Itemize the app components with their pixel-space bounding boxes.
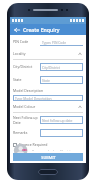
staticText: Model Colour <box>13 104 36 109</box>
button[interactable]: State <box>13 73 83 86</box>
button[interactable]: Upload profile picture <box>13 150 83 151</box>
button[interactable]: Remarks <box>13 126 83 139</box>
button[interactable]: PIN Code <box>13 35 83 48</box>
staticText: Model Description <box>13 88 44 93</box>
staticText: City/District <box>13 64 40 69</box>
button[interactable]: Model Colour <box>13 101 83 113</box>
staticText: Create Enquiry <box>23 26 60 33</box>
button[interactable]: City/District <box>13 60 83 73</box>
staticText: Locality <box>13 51 26 56</box>
staticText: Next Follow-up Date <box>13 115 40 125</box>
staticText: City/District <box>42 65 61 69</box>
button[interactable]: Back <box>12 25 21 34</box>
staticText: Next follow-up date <box>42 118 73 122</box>
staticText: Remarks <box>13 130 40 135</box>
staticText: Type Model Description <box>15 96 52 100</box>
staticText: You can upload profile picture or click … <box>32 150 83 151</box>
button[interactable]: SUBMIT <box>13 153 83 161</box>
staticText: Types PIN Code <box>42 40 67 44</box>
button[interactable]: Home <box>38 169 58 175</box>
staticText: State <box>13 77 40 82</box>
button[interactable]: Finance Required <box>13 139 83 150</box>
staticText: SUBMIT <box>41 155 56 160</box>
staticText: State <box>42 78 50 82</box>
staticText: PIN Code <box>13 39 40 44</box>
button[interactable]: Model Description <box>13 86 83 101</box>
button[interactable]: Next Follow-up Date <box>13 113 83 126</box>
button[interactable]: Locality <box>13 48 83 60</box>
staticText: Finance Required <box>19 142 48 147</box>
